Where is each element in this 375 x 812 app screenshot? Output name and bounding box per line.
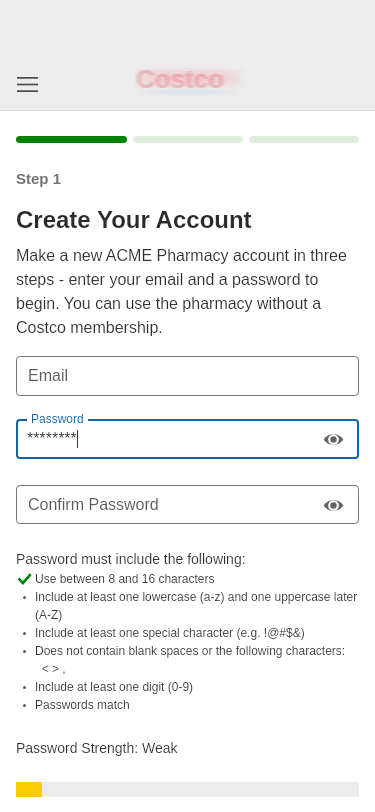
button[interactable] <box>16 419 359 459</box>
staticText: Costco <box>135 64 224 93</box>
staticText: Password Strength: Weak <box>16 740 178 756</box>
staticText: Password must include the following: <box>16 551 246 567</box>
staticText: Confirm Password <box>28 496 159 514</box>
staticText: Make a new ACME Pharmacy account in thre… <box>16 247 359 336</box>
staticText: Create Your Account <box>16 206 252 233</box>
staticText: Include at least one lowercase (a-z) and… <box>35 590 358 603</box>
staticText: Include at least one special character (… <box>35 626 305 639</box>
staticText: (A-Z) <box>35 608 63 621</box>
staticText: < > , <box>35 662 66 675</box>
staticText: Step 1 <box>16 170 62 187</box>
staticText: Password <box>31 412 84 425</box>
button[interactable]: Show confirm password <box>318 490 348 520</box>
button[interactable]: Confirm Password <box>16 485 359 524</box>
button[interactable]: Show password <box>318 424 348 454</box>
staticText: Costco <box>136 64 225 93</box>
staticText: Passwords match <box>35 698 130 711</box>
staticText: Include at least one digit (0-9) <box>35 680 194 693</box>
button[interactable]: Email <box>16 356 359 396</box>
staticText: Use between 8 and 16 characters <box>35 572 215 585</box>
staticText: Costco <box>134 64 223 93</box>
button[interactable]: Menu <box>9 66 45 102</box>
staticText: Does not contain blank spaces or the fol… <box>35 644 346 657</box>
staticText: ******** <box>27 430 77 448</box>
staticText: Costco <box>137 64 226 93</box>
staticText: Email <box>28 367 69 385</box>
staticText: Costco <box>138 64 227 93</box>
